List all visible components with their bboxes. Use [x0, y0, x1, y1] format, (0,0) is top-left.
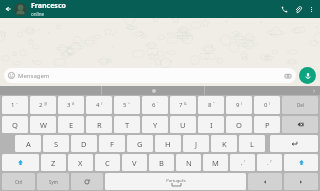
button[interactable]: V: [122, 154, 147, 171]
staticText: W: [40, 120, 47, 130]
staticText: U: [180, 120, 186, 130]
button[interactable]: Q: [2, 116, 28, 133]
staticText: X: [78, 158, 83, 168]
button[interactable]: 0: [254, 96, 280, 114]
button[interactable]: Ctrl: [2, 173, 35, 190]
button[interactable]: Attach: [291, 2, 305, 16]
staticText: Francesco: [31, 1, 66, 11]
button[interactable]: A: [15, 135, 41, 152]
button[interactable]: Emoji and language: [71, 173, 103, 190]
button[interactable]: Del: [282, 96, 318, 114]
button[interactable]: Backspace: [282, 116, 318, 133]
button[interactable]: Shift: [2, 154, 39, 171]
staticText: 5: [123, 101, 127, 109]
button[interactable]: Back: [3, 4, 13, 14]
button[interactable]: Contact photo: [14, 3, 27, 16]
button[interactable]: Move right: [284, 173, 318, 190]
button[interactable]: T: [114, 116, 140, 133]
button[interactable]: More options: [305, 3, 317, 15]
staticText: M: [212, 158, 219, 168]
button[interactable]: Voice message: [299, 67, 316, 84]
staticText: 1: [11, 101, 15, 109]
button[interactable]: Space: [105, 173, 246, 190]
staticText: ?: [270, 159, 272, 164]
staticText: Mensagem: [18, 72, 50, 80]
button[interactable]: Camera: [283, 71, 292, 80]
button[interactable]: .: [257, 154, 282, 171]
staticText: T: [125, 120, 130, 130]
button[interactable]: Mensagem: [4, 68, 296, 83]
button[interactable]: Y: [142, 116, 168, 133]
button[interactable]: 6: [142, 96, 168, 114]
button[interactable]: H: [155, 135, 181, 152]
staticText: H: [165, 139, 171, 149]
staticText: Ctrl: [15, 179, 23, 185]
staticText: C: [105, 158, 110, 168]
button[interactable]: Sym: [37, 173, 69, 190]
button[interactable]: B: [149, 154, 174, 171]
staticText: ): [269, 101, 271, 106]
button[interactable]: ,: [230, 154, 255, 171]
staticText: !: [244, 159, 245, 164]
button[interactable]: M: [203, 154, 228, 171]
staticText: 3: [67, 101, 71, 109]
button[interactable]: F: [99, 135, 125, 152]
staticText: J: [195, 139, 198, 149]
staticText: Y: [153, 120, 158, 130]
button[interactable]: 7: [170, 96, 196, 114]
staticText: 0: [264, 101, 268, 109]
button[interactable]: D: [71, 135, 97, 152]
staticText: ": [213, 101, 215, 106]
button[interactable]: 5: [114, 96, 140, 114]
staticText: (: [241, 101, 243, 106]
button[interactable]: P: [254, 116, 280, 133]
button[interactable]: I: [198, 116, 224, 133]
button[interactable]: L: [239, 135, 265, 152]
button[interactable]: C: [95, 154, 120, 171]
button[interactable]: Enter: [270, 135, 318, 152]
staticText: @: [44, 101, 48, 106]
staticText: D: [81, 139, 87, 149]
staticText: A: [26, 139, 31, 149]
button[interactable]: 3: [58, 96, 84, 114]
button[interactable]: Shift: [284, 154, 318, 171]
staticText: Português: [166, 178, 186, 183]
button[interactable]: Francesco: [31, 1, 277, 17]
button[interactable]: X: [68, 154, 93, 171]
button[interactable]: Call: [277, 2, 291, 16]
staticText: S: [54, 139, 59, 149]
staticText: I: [210, 120, 213, 130]
button[interactable]: 8: [198, 96, 224, 114]
button[interactable]: More suggestions: [308, 86, 320, 95]
button[interactable]: O: [226, 116, 252, 133]
button[interactable]: Move left: [248, 173, 282, 190]
staticText: Sym: [49, 179, 58, 185]
button[interactable]: K: [211, 135, 237, 152]
button[interactable]: S: [43, 135, 69, 152]
staticText: ~: [16, 101, 19, 106]
staticText: 7: [179, 101, 183, 109]
button[interactable]: J: [183, 135, 209, 152]
staticText: F: [110, 139, 114, 149]
button[interactable]: W: [30, 116, 56, 133]
button[interactable]: R: [86, 116, 112, 133]
staticText: B: [159, 158, 164, 168]
staticText: R: [97, 120, 102, 130]
button[interactable]: E: [58, 116, 84, 133]
button[interactable]: 2: [30, 96, 56, 114]
button[interactable]: Z: [41, 154, 66, 171]
button[interactable]: 4: [86, 96, 112, 114]
button[interactable]: G: [127, 135, 153, 152]
button[interactable]: 9: [226, 96, 252, 114]
staticText: O: [236, 120, 242, 130]
staticText: L: [250, 139, 254, 149]
staticText: 8: [208, 101, 212, 109]
button[interactable]: U: [170, 116, 196, 133]
staticText: #: [72, 101, 75, 106]
button[interactable]: 1: [2, 96, 28, 114]
button[interactable]: [102, 86, 205, 95]
staticText: ': [157, 101, 158, 106]
button[interactable]: N: [176, 154, 201, 171]
